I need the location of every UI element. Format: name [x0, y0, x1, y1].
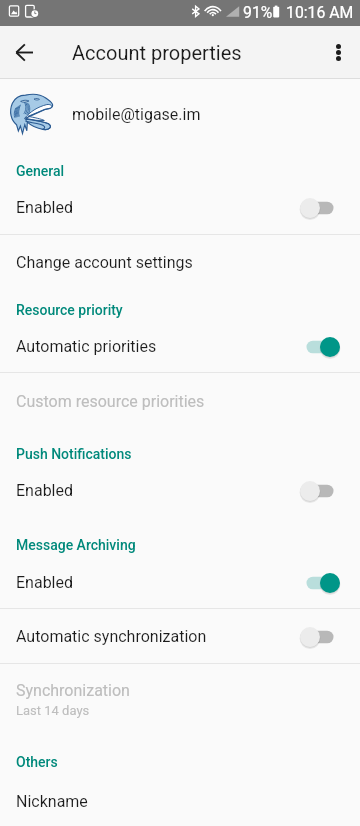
button[interactable]: Enabled: [0, 180, 360, 235]
button[interactable]: Synchronization: [0, 670, 360, 728]
staticText: Message Archiving: [16, 537, 136, 553]
staticText: Synchronization: [16, 681, 130, 700]
staticText: Account properties: [72, 41, 242, 64]
button[interactable]: Back: [0, 28, 48, 76]
button[interactable]: Enabled: [0, 555, 360, 610]
staticText: 10:16 AM: [286, 3, 354, 22]
staticText: General: [16, 163, 65, 179]
staticText: Enabled: [16, 198, 74, 217]
button[interactable]: Enabled: [0, 463, 360, 518]
button[interactable]: Custom resource priorities: [0, 374, 360, 429]
button[interactable]: Nickname: [0, 774, 360, 826]
staticText: Resource priority: [16, 302, 123, 318]
button[interactable]: Automatic synchronization: [0, 609, 360, 664]
staticText: Change account settings: [16, 253, 193, 272]
staticText: 91%: [243, 3, 273, 22]
staticText: Enabled: [16, 573, 74, 592]
staticText: Others: [16, 754, 58, 770]
staticText: Automatic priorities: [16, 337, 157, 356]
button[interactable]: mobile@tigase.im: [0, 80, 360, 148]
staticText: Enabled: [16, 481, 74, 500]
staticText: mobile@tigase.im: [72, 105, 201, 124]
staticText: Custom resource priorities: [16, 392, 205, 411]
button[interactable]: More options: [314, 28, 360, 76]
staticText: Last 14 days: [16, 703, 90, 718]
button[interactable]: Automatic priorities: [0, 319, 360, 374]
staticText: Automatic synchronization: [16, 627, 207, 646]
button[interactable]: Change account settings: [0, 235, 360, 290]
staticText: Push Notifications: [16, 446, 132, 462]
staticText: Nickname: [16, 792, 88, 811]
